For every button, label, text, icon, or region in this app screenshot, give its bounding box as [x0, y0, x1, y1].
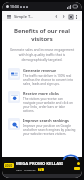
- staticText: Benefits of our real visitors: [8, 27, 76, 43]
- staticText: Improve search rankings: [23, 118, 69, 123]
- button[interactable]: Forward: [60, 13, 67, 20]
- button[interactable]: Receive more clicks: [8, 91, 76, 113]
- staticText: The visitors you receive can navigate yo…: [23, 97, 76, 113]
- staticText: LOGO: [5, 164, 13, 167]
- staticText: INTERNET: [24, 168, 36, 171]
- staticText: The traffic we deliver is 100% real and …: [23, 74, 76, 86]
- button[interactable]: Improve search rankings: [8, 118, 76, 136]
- button[interactable]: Mega promo advertisement: [2, 157, 82, 174]
- button[interactable]: More options: [74, 14, 79, 19]
- button[interactable]: Back: [53, 13, 60, 20]
- staticText: HEM: [16, 168, 22, 171]
- staticText: Receive more clicks: [23, 91, 59, 96]
- staticText: Improve your position on Google and othe…: [23, 124, 76, 136]
- button[interactable]: Menu: [5, 13, 12, 20]
- button[interactable]: Generate revenue: [8, 68, 76, 86]
- staticText: Simple T...: [14, 14, 34, 19]
- button[interactable]: Tabs: [67, 13, 74, 20]
- staticText: Generate sales and increase engagement w…: [8, 47, 76, 62]
- staticText: TV: [39, 168, 43, 171]
- staticText: 10:04: [10, 4, 19, 9]
- staticText: MEGA PROMO KELLASI: [16, 161, 63, 167]
- staticText: Generate revenue: [23, 68, 57, 73]
